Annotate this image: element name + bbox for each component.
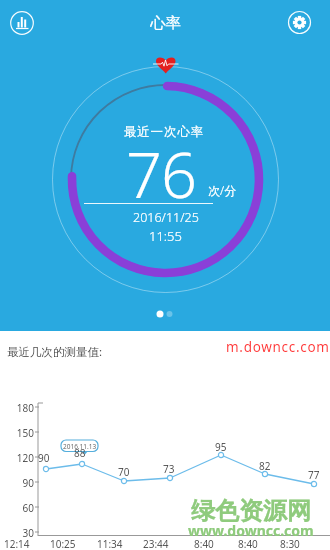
staticText: 10:25: [50, 537, 76, 549]
staticText: 73: [163, 462, 175, 474]
staticText: m.downcc.com: [226, 338, 330, 356]
button[interactable]: [286, 9, 314, 37]
staticText: 76: [126, 131, 196, 217]
staticText: 最近几次的测量值:: [7, 344, 103, 360]
staticText: 次/分: [208, 182, 237, 198]
staticText: 8:40: [194, 537, 214, 549]
staticText: 180: [16, 401, 34, 413]
staticText: 8:40: [238, 537, 258, 549]
staticText: 2016.11.13: [63, 442, 97, 451]
button[interactable]: 最近几次的测量值:: [0, 341, 330, 363]
staticText: 绿色资源网: [191, 496, 311, 524]
staticText: 90: [22, 476, 34, 488]
staticText: 60: [22, 501, 34, 513]
staticText: 150: [16, 426, 34, 438]
staticText: 88: [74, 446, 86, 458]
staticText: 30: [22, 526, 34, 538]
staticText: 77: [308, 468, 320, 480]
staticText: 11:55: [149, 227, 182, 245]
staticText: 90: [38, 451, 50, 463]
button[interactable]: [8, 9, 36, 37]
staticText: 82: [259, 459, 271, 471]
staticText: 70: [118, 465, 130, 477]
staticText: 120: [16, 451, 34, 463]
staticText: 心率: [150, 13, 181, 33]
staticText: 23:44: [143, 537, 169, 549]
staticText: 95: [215, 440, 227, 452]
staticText: 11:34: [97, 537, 123, 549]
staticText: 2016/11/25: [133, 209, 199, 226]
staticText: 8:30: [280, 537, 300, 549]
staticText: 12:14: [4, 537, 30, 549]
staticText: www.downcc.com: [188, 521, 314, 540]
staticText: 最近一次心率: [124, 124, 204, 140]
